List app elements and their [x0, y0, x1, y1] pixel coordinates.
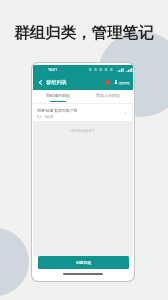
button[interactable]: 我加入的群组 — [83, 90, 133, 99]
button[interactable]: 成员管理 — [113, 79, 131, 85]
staticText: 我创建的群组 — [46, 93, 70, 98]
button[interactable]: Back — [36, 78, 45, 87]
button[interactable]: Notifications — [105, 80, 110, 85]
staticText: 我加入的群组 — [96, 93, 120, 98]
staticText: 10:01 — [48, 67, 58, 72]
staticText: 成员管理 — [119, 81, 130, 84]
staticText: 群组归类，管理笔记 — [14, 23, 154, 43]
button[interactable]: 创建群组 — [38, 256, 129, 269]
staticText: 我要创建美容院客户群 — [37, 108, 78, 113]
staticText: 3人 · 笔记8 — [37, 114, 54, 119]
button[interactable]: 我创建的群组 — [33, 90, 83, 99]
button[interactable]: 我要创建美容院客户群 — [33, 104, 132, 121]
staticText: 创建群组 — [76, 260, 92, 265]
staticText: 群组列表 — [46, 79, 67, 86]
staticText: 没有更多数据了 — [33, 129, 133, 134]
